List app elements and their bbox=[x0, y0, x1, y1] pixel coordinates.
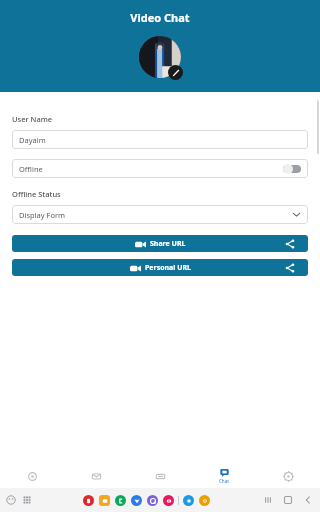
staticText: Personal URL bbox=[145, 263, 191, 273]
button[interactable]: App 2 bbox=[115, 495, 126, 506]
button[interactable]: Recent bbox=[0, 464, 64, 488]
button[interactable]: App 5 bbox=[163, 495, 174, 506]
staticText: Offline bbox=[19, 164, 43, 174]
button[interactable]: App 0 bbox=[83, 495, 94, 506]
staticText: Offline Status bbox=[12, 189, 61, 199]
button[interactable]: App 7 bbox=[199, 495, 210, 506]
other: Share Share URL bbox=[285, 239, 295, 249]
button[interactable]: Share URL bbox=[12, 235, 308, 252]
button[interactable]: App 3 bbox=[131, 495, 142, 506]
staticText: Video Chat bbox=[130, 10, 190, 25]
button[interactable]: Settings bbox=[256, 464, 320, 488]
button[interactable]: App 6 bbox=[183, 495, 194, 506]
button[interactable]: Recents bbox=[262, 494, 274, 506]
button[interactable]: Profile photo bbox=[139, 36, 181, 78]
other: Share Personal URL bbox=[285, 263, 295, 273]
button[interactable]: Display Form bbox=[12, 205, 308, 224]
button[interactable]: Edit profile photo bbox=[168, 65, 183, 80]
staticText: Chat bbox=[219, 478, 229, 484]
staticText: Display Form bbox=[19, 210, 66, 220]
button[interactable]: App 4 bbox=[147, 495, 158, 506]
button[interactable]: App 1 bbox=[99, 495, 110, 506]
button[interactable]: Chat bbox=[192, 464, 256, 488]
button[interactable]: Mail bbox=[64, 464, 128, 488]
staticText: Dayaim bbox=[19, 135, 46, 145]
button[interactable]: Dayaim bbox=[12, 130, 308, 149]
button[interactable]: Offline bbox=[12, 159, 308, 178]
button[interactable]: Cards bbox=[128, 464, 192, 488]
button[interactable]: Personal URL bbox=[12, 259, 308, 276]
button[interactable]: Home bbox=[282, 494, 294, 506]
staticText: Share URL bbox=[150, 239, 186, 249]
button[interactable]: Back bbox=[302, 494, 314, 506]
staticText: User Name bbox=[12, 114, 53, 124]
